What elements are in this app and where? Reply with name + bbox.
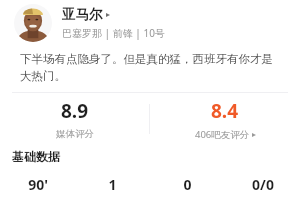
button[interactable]: 1 (75, 175, 150, 200)
button[interactable]: 8.9 (0, 93, 149, 145)
button[interactable]: 90' (0, 175, 75, 200)
button[interactable]: 8.4 (150, 93, 300, 145)
button[interactable]: 0/0 (225, 175, 300, 200)
staticText: 8.4 (211, 98, 239, 124)
staticText: 下半场有点隐身了。但是真的猛，西班牙有你才是大热门。 (20, 52, 280, 83)
other: Player avatar (14, 4, 52, 42)
button[interactable]: Player avatar (0, 0, 300, 46)
staticText: 0/0 (252, 175, 274, 194)
staticText: 巴塞罗那 | 前锋 | 10号 (62, 26, 165, 40)
staticText: 406吧友评分 (195, 128, 250, 141)
staticText: 基础数据 (12, 149, 60, 164)
staticText: 8.9 (61, 98, 89, 124)
staticText: 亚马尔 (62, 6, 103, 23)
staticText: 0 (183, 175, 192, 194)
staticText: 媒体评分 (56, 128, 94, 140)
staticText: 90' (28, 175, 48, 194)
staticText: 1 (108, 175, 117, 194)
button[interactable]: 0 (150, 175, 225, 200)
